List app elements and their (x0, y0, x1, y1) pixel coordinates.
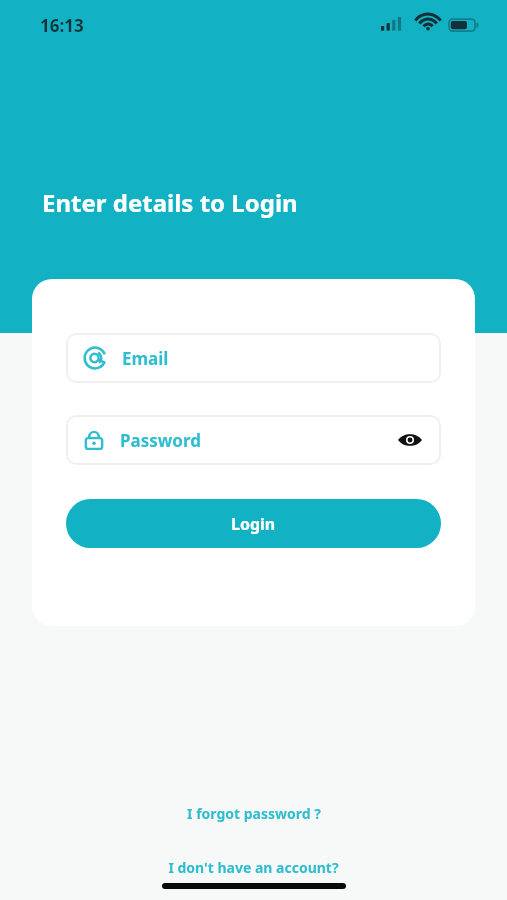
staticText: 16:13 (40, 14, 84, 37)
staticText: Password (120, 429, 201, 452)
staticText: I don't have an account? (168, 858, 339, 877)
button[interactable]: Login (66, 499, 441, 548)
staticText: Enter details to Login (42, 186, 298, 219)
button[interactable]: Email (66, 333, 441, 383)
staticText: Email (122, 347, 169, 370)
button[interactable]: Password (66, 415, 441, 465)
button[interactable]: I forgot password ? (173, 800, 335, 827)
staticText: I forgot password ? (187, 804, 321, 823)
button[interactable]: I don't have an account? (154, 854, 353, 881)
staticText: Login (231, 513, 276, 535)
button[interactable]: Show password (395, 425, 425, 455)
